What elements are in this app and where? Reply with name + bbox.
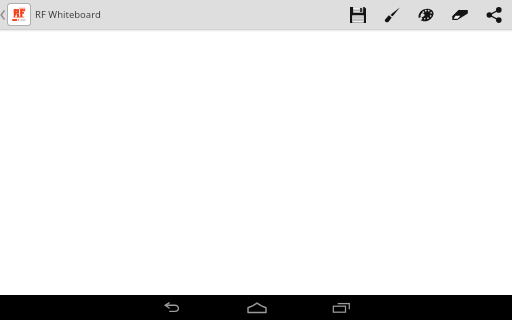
button[interactable]: Home — [214, 295, 299, 320]
button[interactable]: Eraser — [443, 0, 477, 29]
button[interactable]: Share — [477, 0, 511, 29]
button[interactable]: Recent apps — [299, 295, 384, 320]
button[interactable]: Brush — [375, 0, 409, 29]
button[interactable]: Color palette — [409, 0, 443, 29]
button[interactable]: Save — [341, 0, 375, 29]
button[interactable]: RF Whiteboard — [0, 0, 107, 29]
button[interactable]: Back — [129, 295, 214, 320]
staticText: RF Whiteboard — [35, 8, 101, 21]
